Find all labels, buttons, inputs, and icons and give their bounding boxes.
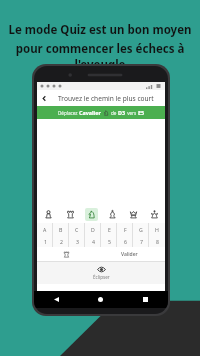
staticText: B (59, 226, 63, 233)
button[interactable]: Fou (102, 206, 123, 223)
button[interactable]: F (117, 223, 133, 235)
staticText: Éclipser (93, 274, 110, 280)
staticText: 2 (60, 238, 63, 245)
button[interactable]: Retour (37, 90, 51, 106)
button[interactable]: G (133, 223, 149, 235)
button[interactable]: Pièce sélectionnée (52, 247, 80, 261)
staticText: 3 (76, 238, 79, 245)
button[interactable]: 4 (85, 235, 101, 247)
button[interactable]: D (85, 223, 101, 235)
staticText: D3 (118, 109, 126, 116)
staticText: Valider (121, 251, 138, 258)
staticText: H (155, 226, 159, 233)
button[interactable]: 6 (117, 235, 133, 247)
staticText: Trouvez le chemin le plus court (58, 94, 154, 103)
staticText: Le mode Quiz est un bon moyen (8, 22, 192, 38)
button[interactable]: Retour (34, 291, 78, 308)
button[interactable]: Accueil (78, 291, 123, 308)
staticText: 4 (92, 238, 95, 245)
button[interactable]: Valider (108, 247, 151, 261)
button[interactable]: 8 (149, 235, 165, 247)
staticText: Déplacez (58, 110, 79, 116)
staticText: E5 (138, 109, 145, 116)
button[interactable]: 2 (53, 235, 69, 247)
staticText: C (75, 226, 79, 233)
staticText: de (111, 110, 118, 116)
staticText: Cavalier (79, 109, 101, 116)
staticText: 1 (44, 238, 47, 245)
button[interactable]: Pion (37, 206, 59, 223)
staticText: A (43, 226, 47, 233)
staticText: 7 (140, 238, 143, 245)
staticText: 6 (124, 238, 127, 245)
button[interactable]: Cavalier (81, 206, 102, 223)
staticText: E (108, 226, 111, 233)
staticText: 8 (156, 238, 159, 245)
button[interactable]: 1 (37, 235, 53, 247)
button[interactable]: 3 (69, 235, 85, 247)
button[interactable]: A (37, 223, 53, 235)
staticText: G (139, 226, 143, 233)
staticText: vers (126, 110, 138, 116)
staticText: 5 (108, 238, 111, 245)
button[interactable]: 5 (101, 235, 117, 247)
button[interactable]: E (101, 223, 117, 235)
staticText: F (124, 226, 127, 233)
button[interactable]: Roi (144, 206, 165, 223)
button[interactable]: Tour (59, 206, 81, 223)
staticText: D (91, 226, 95, 233)
button[interactable]: H (149, 223, 165, 235)
button[interactable]: C (69, 223, 85, 235)
button[interactable]: Éclipser (37, 262, 165, 284)
button[interactable]: Applications récentes (123, 291, 168, 308)
button[interactable]: B (53, 223, 69, 235)
button[interactable]: 7 (133, 235, 149, 247)
button[interactable]: Dame (123, 206, 144, 223)
staticText: pour commencer les échecs à l'eveugle (6, 41, 194, 73)
